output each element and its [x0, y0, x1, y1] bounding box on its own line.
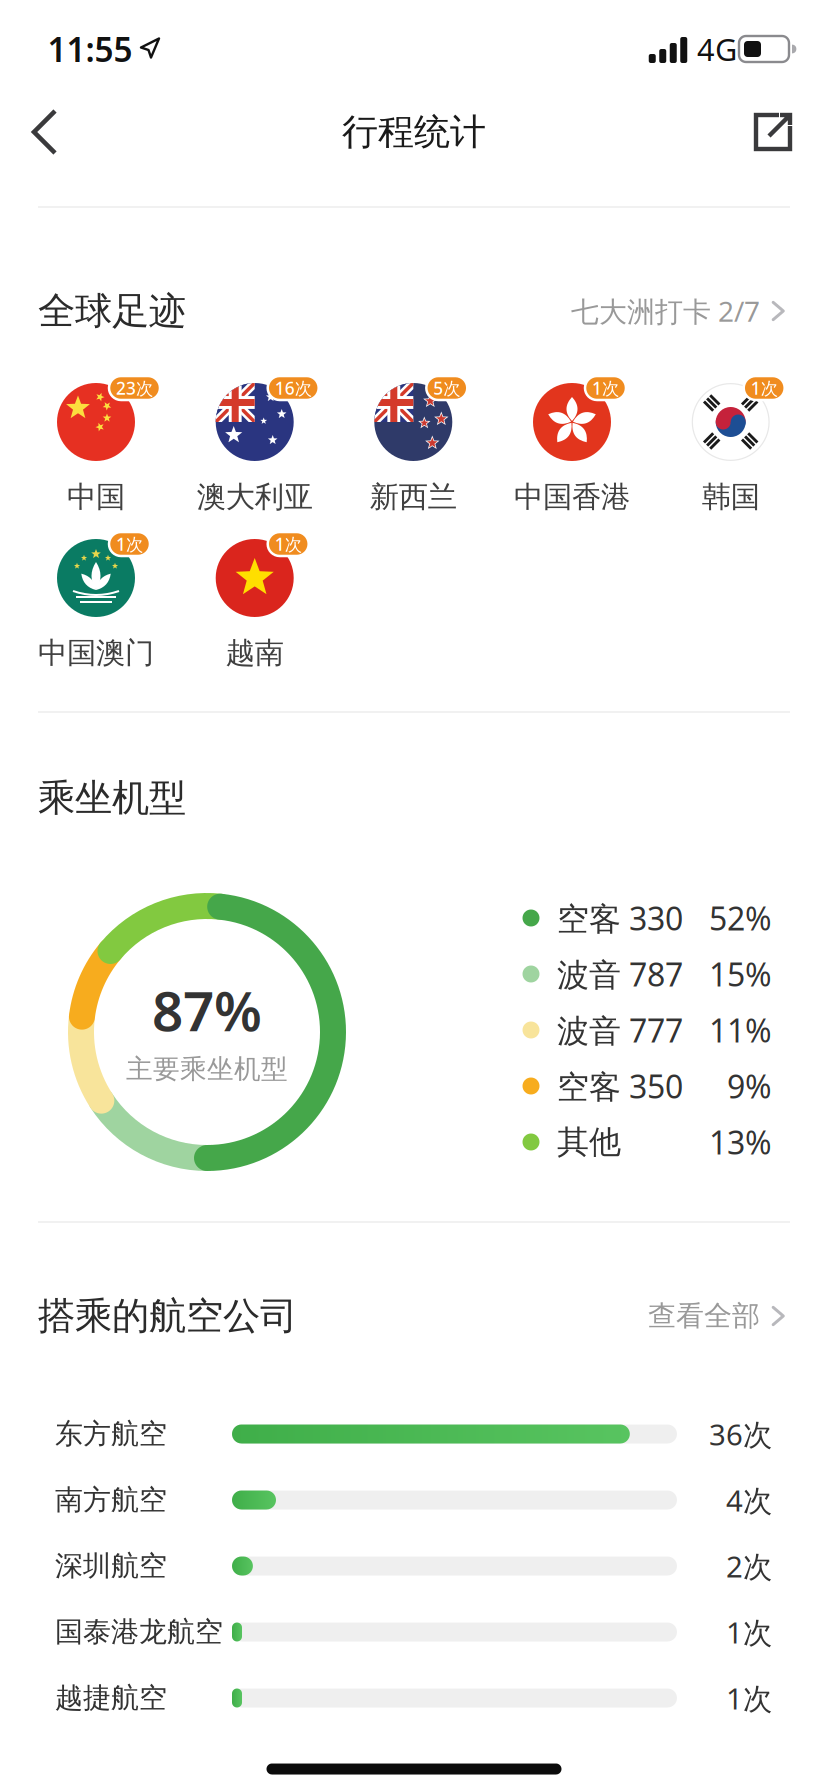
button[interactable]: 查看全部: [648, 1299, 790, 1333]
staticText: 9%: [727, 1065, 772, 1107]
staticText: 4次: [726, 1480, 772, 1519]
staticText: 澳大利亚: [197, 479, 313, 515]
staticText: 15%: [709, 953, 772, 995]
button[interactable]: Share: [753, 112, 793, 152]
staticText: 1次: [726, 1612, 772, 1651]
staticText: 其他: [557, 1122, 621, 1162]
staticText: 1次: [592, 376, 619, 399]
staticText: 中国澳门: [38, 635, 154, 671]
staticText: 乘坐机型: [38, 775, 186, 821]
staticText: 11%: [709, 1009, 772, 1051]
staticText: 新西兰: [370, 479, 457, 515]
staticText: 11:55: [47, 27, 132, 71]
staticText: 1次: [116, 532, 143, 555]
staticText: 查看全部: [648, 1299, 760, 1333]
staticText: 南方航空: [55, 1483, 167, 1517]
staticText: 1次: [275, 532, 302, 555]
staticText: 16次: [275, 376, 312, 399]
staticText: 波音 787: [557, 953, 683, 995]
staticText: 波音 777: [557, 1009, 683, 1051]
staticText: 韩国: [702, 479, 760, 515]
staticText: 越捷航空: [55, 1681, 167, 1715]
staticText: 13%: [709, 1121, 772, 1163]
staticText: 87%: [152, 974, 262, 1046]
staticText: 36次: [709, 1414, 772, 1453]
button[interactable]: Back: [25, 103, 69, 161]
staticText: 23次: [116, 376, 153, 399]
staticText: 空客 350: [557, 1065, 683, 1107]
staticText: 5次: [433, 376, 460, 399]
staticText: 中国香港: [514, 479, 630, 515]
staticText: 1次: [726, 1678, 772, 1717]
staticText: 搭乘的航空公司: [38, 1293, 297, 1339]
staticText: 2次: [726, 1546, 772, 1585]
staticText: 七大洲打卡 2/7: [571, 292, 760, 330]
staticText: 空客 330: [557, 897, 683, 939]
staticText: 4G: [697, 29, 737, 69]
staticText: 52%: [709, 897, 772, 939]
staticText: 越南: [226, 635, 284, 671]
staticText: 东方航空: [55, 1417, 167, 1451]
staticText: 主要乘坐机型: [126, 1053, 288, 1085]
button[interactable]: 七大洲打卡 2/7: [571, 292, 790, 330]
staticText: 中国: [67, 479, 125, 515]
staticText: 行程统计: [342, 110, 486, 154]
staticText: 1次: [751, 376, 778, 399]
staticText: 深圳航空: [55, 1549, 167, 1583]
staticText: 国泰港龙航空: [55, 1615, 223, 1649]
staticText: 全球足迹: [38, 288, 186, 334]
